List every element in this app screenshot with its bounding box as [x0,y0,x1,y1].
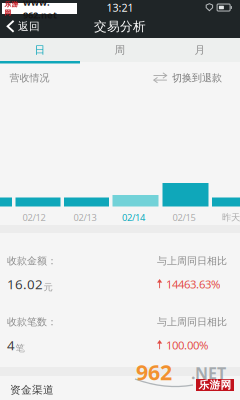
button[interactable]: 周 [80,38,160,62]
staticText: 13:21 [106,0,133,15]
button[interactable]: 切换到退款 [107,69,231,87]
staticText: .NET [191,362,226,384]
button[interactable]: 日 [0,38,80,62]
button[interactable]: 月 [160,38,240,62]
staticText: www.962.net [23,0,57,21]
staticText: 乐游网 [4,0,18,17]
staticText: 962 [136,357,172,387]
staticText: 与上周同日相比 [157,316,227,328]
staticText: 交易分析 [94,18,146,34]
staticText: 周 [114,43,125,57]
staticText: 与上周同日相比 [157,255,227,267]
staticText: 02/14 [122,211,145,224]
staticText: 02/15 [172,211,195,224]
staticText: 返回 [18,20,40,33]
staticText: 100.00% [166,337,208,353]
staticText: 02/13 [73,211,96,224]
staticText: 笔 [15,342,24,354]
button[interactable]: 返回 [0,15,62,38]
staticText: 乐游网 [198,378,231,392]
staticText: 14463.63% [166,276,220,292]
staticText: 月 [194,43,205,57]
staticText: 资金渠道 [10,383,54,397]
staticText: 4 [7,336,15,354]
staticText: 02/12 [22,211,45,224]
staticText: 日 [34,43,45,57]
button[interactable]: 资金渠道 [0,378,240,400]
staticText: 收款金额： [7,255,57,267]
staticText: 切换到退款 [172,72,222,84]
staticText: 昨天 [222,212,240,223]
staticText: 营收情况 [9,72,49,84]
staticText: 16.02 [7,275,43,293]
staticText: 收款笔数： [7,316,57,328]
staticText: 元 [43,281,52,293]
